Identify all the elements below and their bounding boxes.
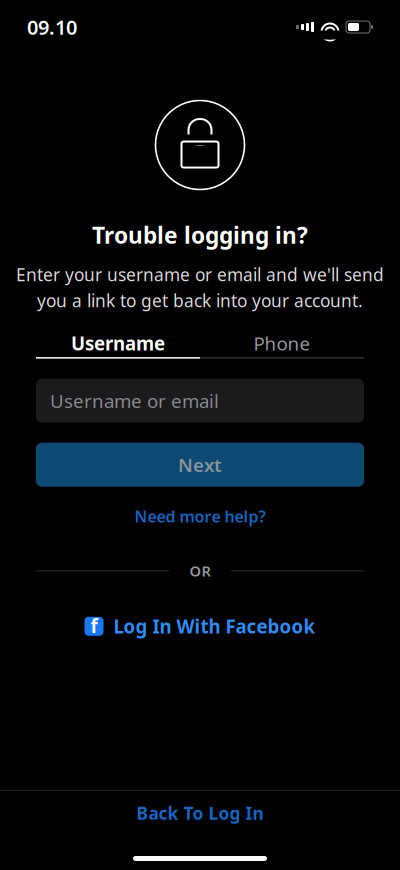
staticText: Back To Log In [136, 801, 263, 824]
staticText: Phone [253, 331, 310, 355]
button[interactable]: f [70, 606, 329, 647]
button[interactable]: Next [36, 443, 364, 487]
staticText: Username [71, 331, 165, 355]
button[interactable]: Username [36, 329, 200, 357]
staticText: Next [178, 452, 222, 477]
staticText: 09.10 [27, 14, 77, 40]
staticText: f [90, 613, 97, 638]
staticText: Trouble logging in? [92, 220, 308, 250]
staticText: Username or email [50, 388, 219, 413]
staticText: OR [189, 561, 210, 581]
button[interactable]: Need more help? [122, 499, 277, 534]
staticText: Log In With Facebook [113, 614, 315, 639]
staticText: you a link to get back into your account… [37, 289, 363, 312]
button[interactable]: Back To Log In [0, 791, 400, 835]
button[interactable]: Username or email [36, 379, 364, 423]
button[interactable]: Phone [200, 329, 364, 357]
staticText: Need more help? [134, 506, 265, 527]
staticText: Enter your username or email and we'll s… [16, 263, 384, 286]
